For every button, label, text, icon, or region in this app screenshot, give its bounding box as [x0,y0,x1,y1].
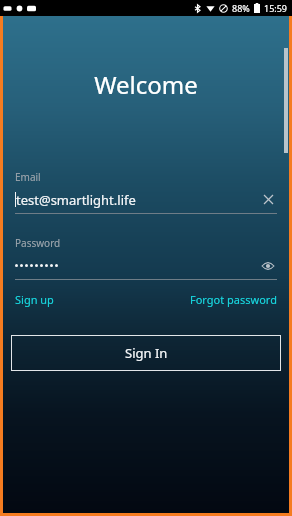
button[interactable]: Sign up [15,292,54,307]
staticText: 15:59 [264,2,288,14]
staticText: Welcome [3,68,289,101]
staticText: Forgot password [190,292,277,307]
staticText: test@smartlight.life [16,191,136,208]
button[interactable]: Forgot password [190,292,277,307]
button[interactable]: Show password [259,257,277,274]
staticText: 88% [232,2,250,14]
button[interactable]: Clear email [259,191,277,208]
staticText: Sign up [15,292,54,307]
staticText: Password [15,236,61,250]
button[interactable]: Sign In [11,335,281,371]
staticText: Sign In [125,344,168,362]
staticText: Email [15,170,41,184]
